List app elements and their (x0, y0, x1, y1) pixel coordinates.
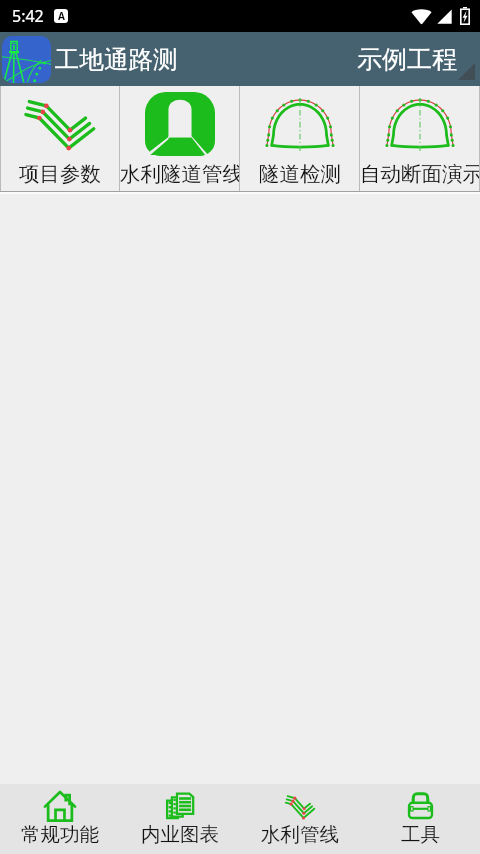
button[interactable]: 水利管线 (240, 784, 360, 854)
staticText: 示例工程 (357, 44, 457, 75)
staticText: 工具 (401, 822, 440, 847)
staticText: A (58, 9, 65, 23)
staticText: 5:42 (12, 5, 44, 27)
staticText: 内业图表 (141, 822, 219, 847)
button[interactable]: 内业图表 (120, 784, 240, 854)
staticText: 工地通路测 (55, 44, 178, 75)
button[interactable]: 隧道检测 (240, 86, 359, 191)
button[interactable]: 项目参数 (1, 86, 119, 191)
staticText: 常规功能 (21, 822, 99, 847)
staticText: 水利管线 (261, 822, 339, 847)
staticText: 自动断面演示 (360, 161, 479, 187)
staticText: 水利隧道管线 (120, 161, 239, 187)
staticText: 项目参数 (19, 161, 101, 187)
button[interactable]: 工具 (360, 784, 480, 854)
button[interactable]: App logo (2, 36, 51, 83)
button[interactable]: 常规功能 (0, 784, 120, 854)
button[interactable]: 示例工程 (349, 32, 480, 86)
button[interactable]: 水利隧道管线 (120, 86, 239, 191)
staticText: 隧道检测 (259, 161, 341, 187)
button[interactable]: 自动断面演示 (360, 86, 479, 191)
